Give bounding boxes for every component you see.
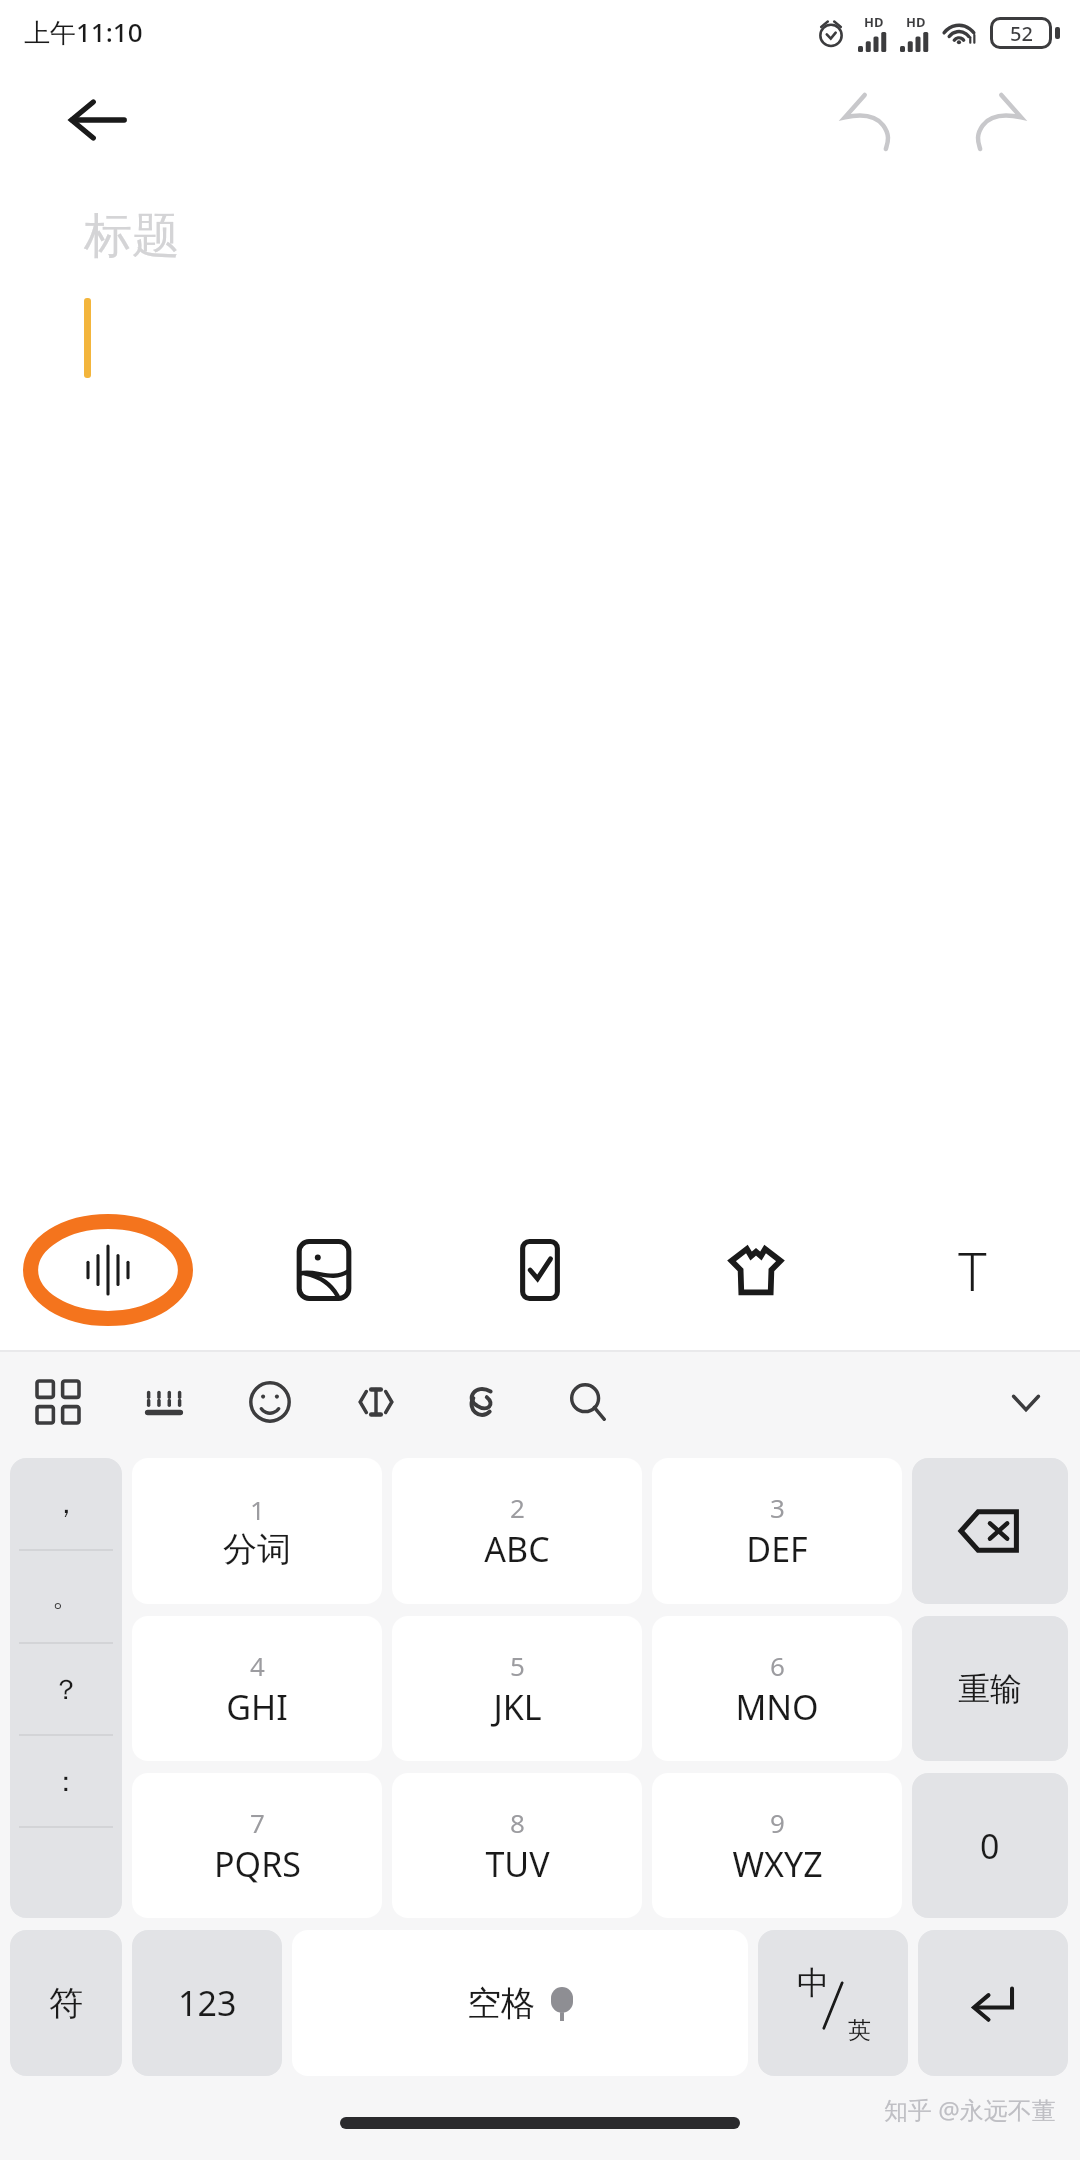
staticText: GHI — [226, 1684, 288, 1730]
button[interactable]: 重输 — [912, 1616, 1068, 1761]
button[interactable]: Back — [52, 75, 142, 165]
staticText: 重输 — [958, 1669, 1022, 1709]
button[interactable]: ， — [10, 1458, 122, 1549]
staticText: 6 — [770, 1648, 785, 1683]
button[interactable]: Checklist — [432, 1190, 648, 1350]
staticText: WXYZ — [732, 1841, 823, 1887]
staticText: 。 — [52, 1579, 80, 1614]
staticText: HD — [864, 13, 884, 31]
staticText: 空格 — [467, 1982, 535, 2025]
staticText: TUV — [485, 1841, 550, 1887]
staticText: 8 — [510, 1805, 525, 1840]
button[interactable]: Hide keyboard — [990, 1366, 1062, 1438]
button[interactable]: ： — [10, 1736, 122, 1826]
button[interactable]: 换行 — [918, 1930, 1068, 2076]
staticText: JKL — [493, 1684, 542, 1730]
staticText: 英 — [848, 2016, 871, 2045]
button[interactable]: 2 ABC — [392, 1458, 642, 1604]
button[interactable]: Undo — [822, 72, 918, 168]
button[interactable]: Keyboard — [128, 1366, 200, 1438]
button[interactable]: 9 WXYZ — [652, 1773, 902, 1918]
staticText: ： — [52, 1764, 80, 1799]
button[interactable]: 中英切换 — [758, 1930, 908, 2076]
button[interactable]: 4 GHI — [132, 1616, 382, 1761]
button[interactable]: Voice input — [0, 1190, 216, 1350]
button[interactable]: Insert image — [216, 1190, 432, 1350]
button[interactable]: 5 JKL — [392, 1616, 642, 1761]
staticText: ？ — [52, 1672, 80, 1707]
staticText: 标题 — [84, 206, 180, 266]
staticText: 5 — [510, 1648, 525, 1683]
staticText: 9 — [770, 1805, 785, 1840]
button[interactable]: Text style — [864, 1190, 1080, 1350]
button[interactable]: 3 DEF — [652, 1458, 902, 1604]
staticText: 中 — [797, 1963, 829, 2003]
staticText: MNO — [735, 1684, 819, 1730]
staticText: 52 — [1010, 20, 1033, 47]
staticText: 3 — [770, 1490, 785, 1525]
staticText: ， — [52, 1486, 80, 1521]
button[interactable]: 符号 — [10, 1930, 122, 2076]
staticText: 知乎 @永远不董 — [884, 2093, 1056, 2126]
button[interactable]: 1 分词 — [132, 1458, 382, 1604]
staticText: 1 — [250, 1492, 265, 1527]
button[interactable]: 空格 — [292, 1930, 748, 2076]
staticText: 0 — [980, 1823, 1000, 1869]
button[interactable]: 6 MNO — [652, 1616, 902, 1761]
staticText: PQRS — [214, 1841, 301, 1887]
button[interactable]: 7 PQRS — [132, 1773, 382, 1918]
staticText: ABC — [484, 1526, 550, 1572]
staticText: T — [958, 1233, 987, 1307]
button[interactable]: Redo — [948, 72, 1044, 168]
staticText: 分词 — [223, 1528, 291, 1571]
button[interactable]: Template — [648, 1190, 864, 1350]
button[interactable]: 8 TUV — [392, 1773, 642, 1918]
button[interactable]: Edit text — [340, 1366, 412, 1438]
button[interactable]: ？ — [10, 1644, 122, 1734]
staticText: 2 — [510, 1490, 525, 1525]
button[interactable]: 0 — [912, 1773, 1068, 1918]
staticText: 123 — [178, 1980, 237, 2026]
staticText: 4 — [250, 1648, 265, 1683]
staticText: 7 — [250, 1805, 265, 1840]
button[interactable]: Backspace — [912, 1458, 1068, 1604]
button[interactable]: Layouts — [22, 1366, 94, 1438]
staticText: HD — [906, 13, 926, 31]
button[interactable]: Search — [552, 1366, 624, 1438]
staticText: 上午11:10 — [24, 14, 143, 50]
button[interactable]: Emoji — [234, 1366, 306, 1438]
staticText: DEF — [746, 1526, 808, 1572]
button[interactable]: 123 — [132, 1930, 282, 2076]
staticText: 符 — [49, 1982, 83, 2025]
button[interactable]: 。 — [10, 1551, 122, 1642]
button[interactable]: Clipboard — [446, 1366, 518, 1438]
